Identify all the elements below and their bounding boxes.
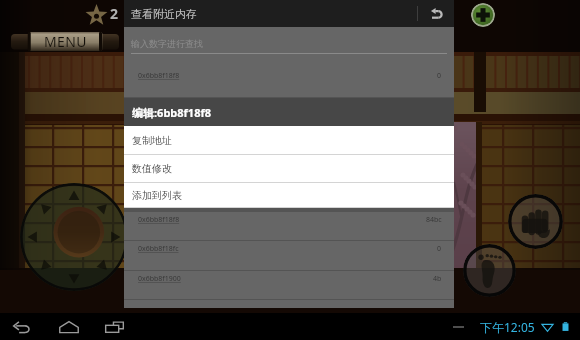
- staticText: 编辑:6bb8f18f8: [132, 105, 211, 120]
- button[interactable]: 0x6bb8f1900: [124, 271, 454, 299]
- button[interactable]: Add: [471, 3, 495, 27]
- button[interactable]: Kick: [463, 244, 516, 297]
- staticText: 4b: [433, 274, 442, 284]
- staticText: 0: [437, 244, 442, 254]
- staticText: 下午12:05: [480, 319, 535, 335]
- button[interactable]: 输入数字进行查找: [124, 27, 454, 68]
- button[interactable]: 0x6bb8f18f8: [124, 68, 454, 97]
- button[interactable]: Recents: [102, 313, 127, 340]
- staticText: 2: [110, 4, 119, 23]
- button[interactable]: 0x6bb8f18f8: [124, 212, 454, 240]
- button[interactable]: 0x6bb8f18fc: [124, 241, 454, 270]
- staticText: 复制地址: [132, 134, 172, 147]
- staticText: 添加到列表: [132, 189, 182, 202]
- staticText: 0x6bb8f1900: [138, 274, 181, 284]
- button[interactable]: MENU: [11, 32, 119, 51]
- button[interactable]: Back: [10, 313, 35, 340]
- staticText: 0: [437, 71, 442, 81]
- staticText: 0x6bb8f18f8: [138, 215, 180, 225]
- staticText: 输入数字进行查找: [131, 38, 203, 49]
- button[interactable]: Joystick: [20, 183, 128, 291]
- staticText: 84bc: [426, 215, 442, 225]
- staticText: 0x6bb8f18fc: [138, 244, 179, 254]
- button[interactable]: 添加到列表: [124, 183, 454, 207]
- button[interactable]: Home: [56, 313, 81, 340]
- staticText: 0x6bb8f18f8: [138, 71, 180, 81]
- button[interactable]: Punch: [508, 194, 563, 249]
- button[interactable]: 数值修改: [124, 155, 454, 182]
- button[interactable]: 编辑:6bb8f18f8: [124, 98, 454, 126]
- button[interactable]: Undo: [418, 0, 454, 27]
- staticText: MENU: [44, 32, 87, 51]
- staticText: 查看附近内存: [131, 7, 197, 21]
- button[interactable]: 复制地址: [124, 126, 454, 154]
- staticText: 数值修改: [132, 162, 172, 175]
